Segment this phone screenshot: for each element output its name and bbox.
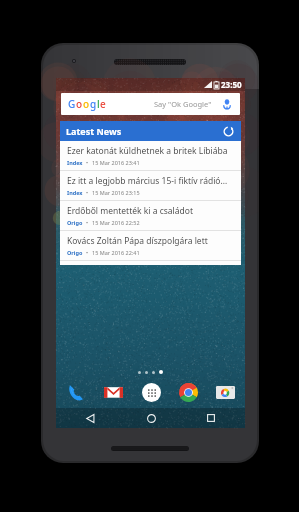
staticText: 23:50 bbox=[221, 79, 242, 90]
staticText: • bbox=[86, 249, 89, 256]
staticText: e bbox=[100, 97, 106, 111]
button[interactable]: Back bbox=[82, 410, 98, 426]
staticText: Index bbox=[67, 189, 83, 196]
staticText: Origo bbox=[67, 249, 83, 256]
button[interactable]: All apps bbox=[139, 380, 163, 404]
button[interactable]: Kovács Zoltán Pápa díszpolgára lett bbox=[60, 231, 241, 260]
staticText: • bbox=[86, 189, 89, 196]
staticText: g bbox=[90, 97, 97, 111]
staticText: Ezer katonát küldhetnek a britek Líbiába bbox=[67, 145, 228, 157]
staticText: Latest News bbox=[66, 125, 122, 137]
button[interactable]: Camera bbox=[213, 380, 237, 404]
staticText: l bbox=[97, 97, 100, 111]
button[interactable]: Voice search bbox=[221, 98, 233, 110]
button[interactable]: Refresh bbox=[222, 125, 235, 138]
staticText: Say "Ok Google" bbox=[154, 99, 212, 109]
staticText: 15 Mar 2016 23:15 bbox=[92, 189, 140, 196]
staticText: Kovács Zoltán Pápa díszpolgára lett bbox=[67, 235, 208, 247]
staticText: • bbox=[86, 159, 89, 166]
button[interactable]: G bbox=[61, 93, 240, 115]
staticText: 15 Mar 2016 23:41 bbox=[92, 159, 140, 166]
button[interactable]: Home bbox=[143, 410, 159, 426]
staticText: o bbox=[83, 97, 90, 111]
staticText: 15 Mar 2016 22:41 bbox=[92, 249, 140, 256]
staticText: 15 Mar 2016 22:52 bbox=[92, 219, 140, 226]
button[interactable]: Erdőből mentették ki a családot bbox=[60, 201, 241, 230]
button[interactable]: Ezer katonát küldhetnek a britek Líbiába bbox=[60, 141, 241, 170]
staticText: Erdőből mentették ki a családot bbox=[67, 205, 193, 217]
button[interactable]: Recent apps bbox=[203, 410, 219, 426]
staticText: Origo bbox=[67, 219, 83, 226]
button[interactable]: Ez itt a legjobb március 15-i fiktív rád… bbox=[60, 171, 241, 200]
staticText: Ez itt a legjobb március 15-i fiktív rád… bbox=[67, 175, 235, 187]
button[interactable]: Phone bbox=[64, 380, 88, 404]
staticText: G bbox=[68, 97, 76, 111]
staticText: o bbox=[76, 97, 83, 111]
button[interactable]: Chrome bbox=[176, 380, 200, 404]
staticText: Index bbox=[67, 159, 83, 166]
button[interactable]: Gmail bbox=[101, 380, 125, 404]
staticText: • bbox=[86, 219, 89, 226]
